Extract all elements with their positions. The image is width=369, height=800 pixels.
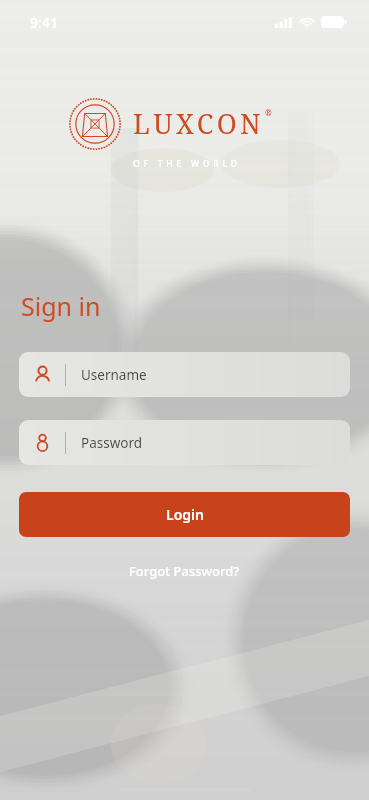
button[interactable]: Password xyxy=(19,420,350,465)
staticText: Forgot Password? xyxy=(129,562,240,580)
staticText: ® xyxy=(265,107,272,118)
button[interactable]: Forgot Password? xyxy=(115,556,254,586)
button[interactable]: Username xyxy=(19,352,350,397)
staticText: Password xyxy=(81,434,143,452)
button[interactable]: Login xyxy=(19,492,350,537)
staticText: Username xyxy=(81,366,147,384)
staticText: OF THE WORLD xyxy=(133,158,241,170)
staticText: Login xyxy=(166,505,204,524)
staticText: LUXCON xyxy=(133,105,265,142)
staticText: 9:41 xyxy=(30,13,58,32)
staticText: Sign in xyxy=(21,289,101,323)
